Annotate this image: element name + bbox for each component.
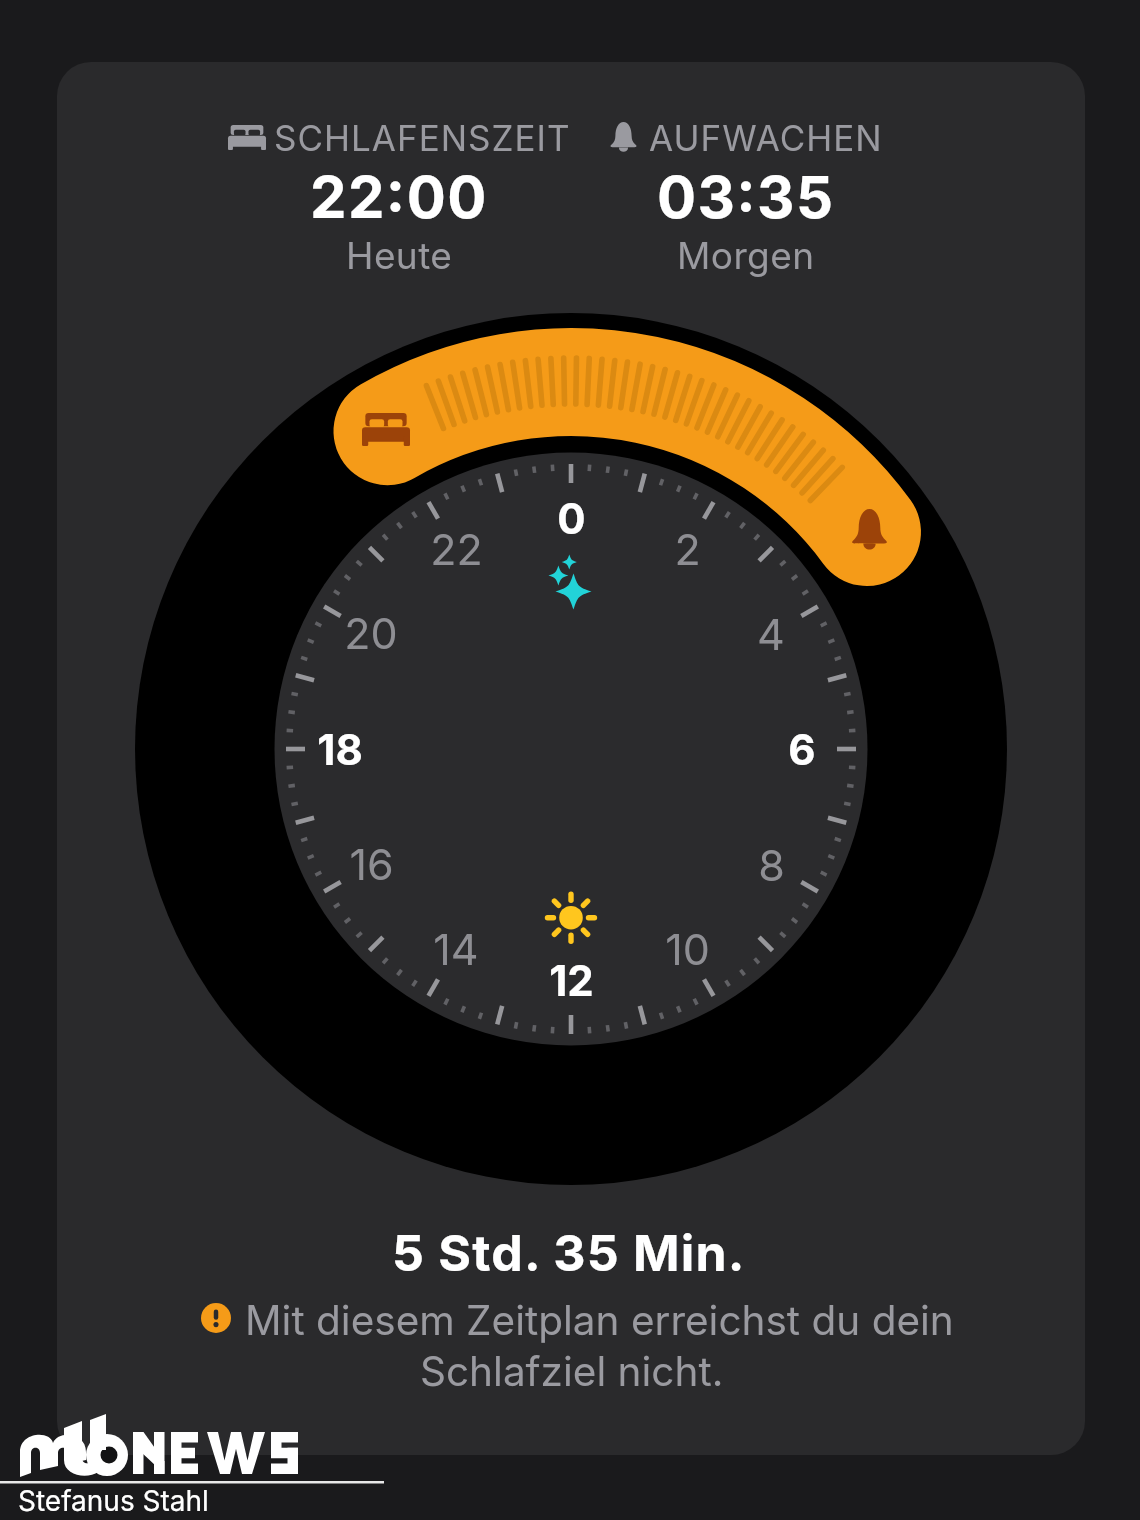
button[interactable]: SCHLAFENSZEIT [189, 117, 609, 289]
staticText: 5 Std. 35 Min. [392, 1223, 746, 1283]
staticText: 14 [433, 923, 479, 975]
staticText: 4 [757, 608, 785, 660]
staticText: 2 [674, 523, 701, 575]
staticText: Mit diesem Zeitplan erreichst du dein [245, 1296, 954, 1345]
staticText: Heute [346, 233, 453, 278]
staticText: 8 [758, 839, 785, 891]
staticText: 10 [665, 923, 710, 975]
button[interactable]: Schlafenszeit einstellen [332, 375, 440, 483]
staticText: 0 [557, 493, 586, 544]
staticText: 18 [317, 724, 363, 775]
staticText: 6 [788, 724, 816, 775]
staticText: AUFWACHEN [649, 117, 883, 157]
staticText: SCHLAFENSZEIT [274, 117, 571, 157]
staticText: 22:00 [310, 162, 488, 232]
staticText: 20 [344, 607, 398, 659]
button[interactable]: Weckzeit einstellen [816, 474, 924, 582]
staticText: Stefanus Stahl [18, 1484, 209, 1518]
staticText: Morgen [677, 233, 815, 278]
staticText: 16 [349, 838, 394, 890]
staticText: 03:35 [657, 162, 835, 232]
staticText: 12 [549, 955, 594, 1006]
button[interactable]: AUFWACHEN [536, 117, 956, 289]
staticText: Schlafziel nicht. [420, 1347, 724, 1396]
staticText: 22 [430, 523, 483, 575]
other: Schlafplan Zifferblatt [0, 0, 1140, 1520]
